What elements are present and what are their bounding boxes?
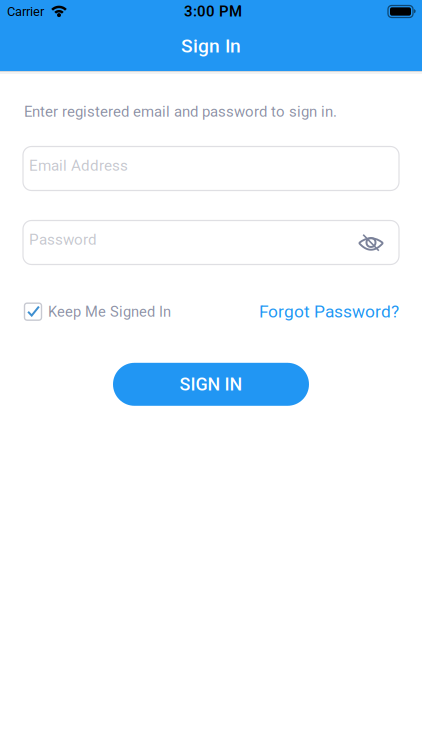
staticText: Carrier <box>7 4 44 19</box>
staticText: Email Address <box>29 157 128 174</box>
button[interactable]: SIGN IN <box>113 363 309 406</box>
staticText: Password <box>29 231 97 248</box>
staticText: Enter registered email and password to s… <box>24 103 337 120</box>
staticText: Forgot Password? <box>259 301 399 322</box>
staticText: Sign In <box>181 35 241 57</box>
staticText: 3:00 PM <box>184 3 242 20</box>
staticText: SIGN IN <box>179 374 242 395</box>
staticText: Keep Me Signed In <box>48 303 171 320</box>
button[interactable]: Password <box>23 220 399 264</box>
button[interactable]: Email Address <box>23 146 399 190</box>
button[interactable]: Forgot Password? <box>259 301 399 322</box>
button[interactable]: Keep Me Signed In <box>24 303 171 321</box>
button[interactable]: Show password <box>357 233 399 251</box>
